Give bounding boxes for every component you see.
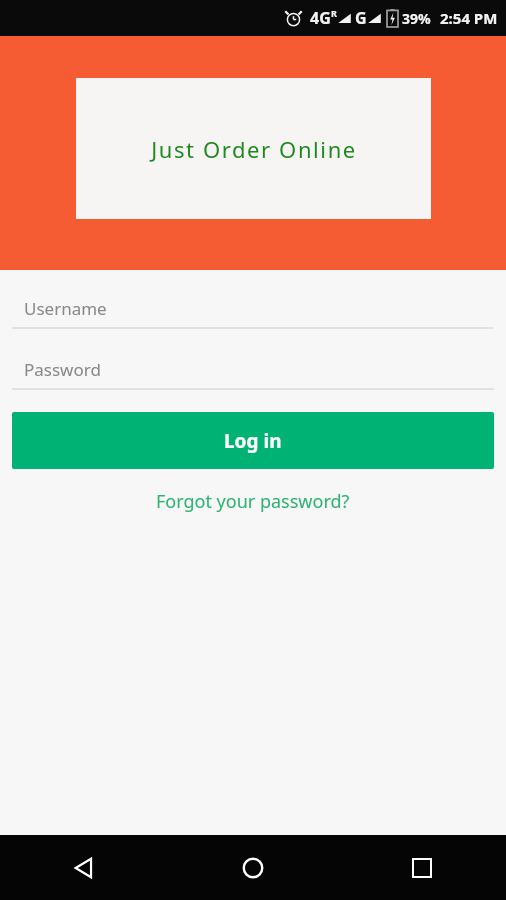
staticText: Log in	[224, 428, 282, 454]
button[interactable]: Username	[0, 290, 506, 329]
button[interactable]: Forgot your password?	[140, 479, 366, 524]
staticText: Password	[24, 358, 101, 381]
button[interactable]: Log in	[12, 412, 494, 469]
staticText: Username	[24, 297, 107, 320]
staticText: Forgot your password?	[156, 489, 350, 514]
button[interactable]: Password	[0, 351, 506, 390]
staticText: 2:54 PM	[440, 8, 498, 28]
staticText: R	[331, 7, 337, 19]
button[interactable]: Home	[168, 835, 337, 900]
button[interactable]: Recent apps	[337, 835, 506, 900]
button[interactable]: Back	[0, 835, 168, 900]
staticText: G	[355, 7, 367, 29]
staticText: 4G	[310, 7, 331, 29]
staticText: Just Order Online	[151, 134, 357, 164]
staticText: 39%	[402, 9, 431, 28]
